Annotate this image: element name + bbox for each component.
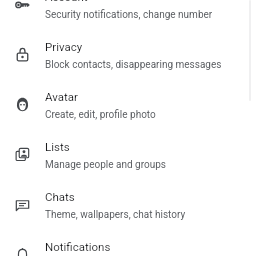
staticText: Chats xyxy=(45,190,75,203)
staticText: Manage people and groups xyxy=(45,159,166,171)
staticText: Avatar xyxy=(45,90,78,103)
button[interactable]: Privacy xyxy=(0,30,256,80)
staticText: Lists xyxy=(45,140,70,153)
button[interactable]: Chats xyxy=(0,180,256,230)
staticText: Theme, wallpapers, chat history xyxy=(45,209,186,221)
button[interactable]: Account xyxy=(0,0,256,30)
button[interactable]: Lists xyxy=(0,130,256,180)
staticText: Security notifications, change number xyxy=(45,9,213,21)
button[interactable]: Notifications xyxy=(0,230,256,256)
button[interactable]: Avatar xyxy=(0,80,256,130)
staticText: Create, edit, profile photo xyxy=(45,109,156,121)
staticText: Block contacts, disappearing messages xyxy=(45,59,222,71)
staticText: Account xyxy=(45,0,88,3)
staticText: Privacy xyxy=(45,40,83,53)
staticText: Notifications xyxy=(45,240,111,253)
